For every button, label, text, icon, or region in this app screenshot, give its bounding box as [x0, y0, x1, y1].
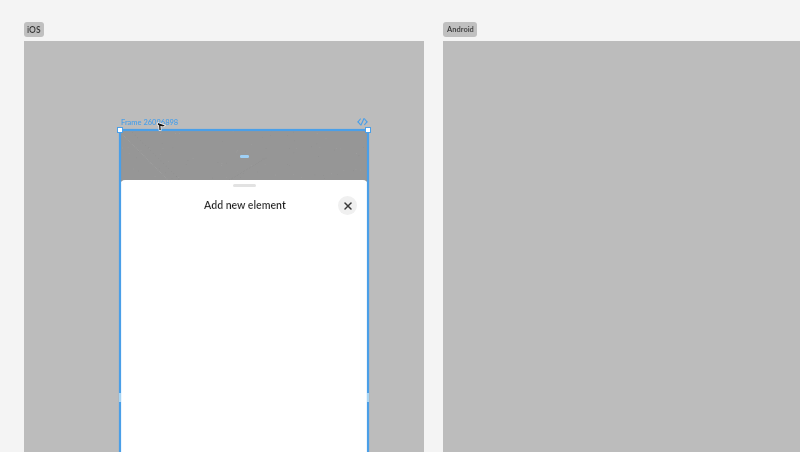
button[interactable]: Android	[443, 22, 477, 37]
staticText: iOS	[27, 25, 41, 35]
button[interactable]: Close	[338, 196, 357, 215]
staticText: Android	[447, 25, 474, 34]
button[interactable]	[233, 184, 256, 187]
button[interactable]: iOS	[24, 22, 44, 37]
button[interactable]: View code	[356, 115, 369, 127]
staticText: Add new element	[204, 199, 286, 212]
button[interactable]: Frame 26096898	[121, 118, 179, 127]
